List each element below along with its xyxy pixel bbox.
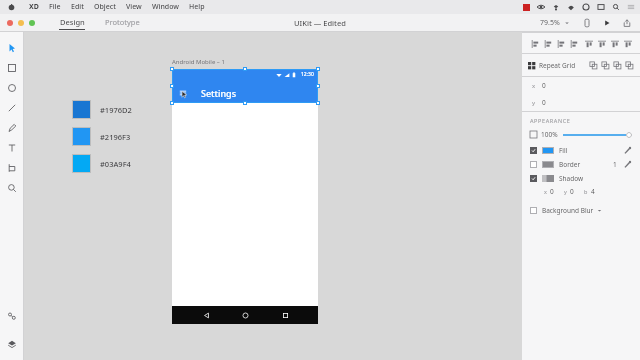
button[interactable]: Status item [537, 3, 545, 11]
button[interactable]: #2196F3 [72, 127, 131, 146]
button[interactable]: Navigation drawer [179, 89, 187, 97]
button[interactable]: Boolean op 2 [601, 61, 610, 70]
button[interactable]: Color picker for Border [623, 160, 632, 169]
button[interactable]: Zoom [29, 20, 35, 26]
button[interactable]: Status item [552, 3, 560, 11]
staticText: y [532, 99, 536, 107]
staticText: Window [152, 2, 179, 12]
staticText: Design [60, 17, 85, 27]
button[interactable]: Distribute 1 [528, 37, 541, 50]
button[interactable]: Edit [66, 2, 89, 12]
button[interactable]: Status item [627, 3, 635, 11]
staticText: Background Blur [542, 206, 594, 215]
button[interactable]: Zoom level [564, 20, 570, 26]
button[interactable]: Line [2, 98, 22, 118]
staticText: XD [29, 2, 39, 12]
staticText: 0 [550, 187, 554, 196]
button[interactable]: Help [184, 2, 210, 12]
button[interactable]: Share [622, 18, 632, 28]
button[interactable]: Align 2 [595, 37, 608, 50]
button[interactable]: Back [200, 309, 212, 321]
button[interactable]: Align 1 [582, 37, 595, 50]
staticText: UIKit — Edited [294, 18, 346, 28]
button[interactable]: Android Mobile – 1 [172, 58, 225, 66]
button[interactable]: x [544, 187, 554, 196]
button[interactable]: Text [2, 138, 22, 158]
button[interactable]: Artboard [2, 158, 22, 178]
button[interactable]: Pen [2, 118, 22, 138]
button[interactable]: Status item [582, 3, 590, 11]
button[interactable]: Distribute 4 [567, 37, 580, 50]
button[interactable]: Status item [567, 3, 575, 11]
button[interactable]: Window [147, 2, 184, 12]
button[interactable]: Rectangle [2, 58, 22, 78]
button[interactable]: Background Blur [530, 206, 632, 215]
staticText: x [544, 188, 547, 195]
button[interactable]: Prototype [105, 17, 140, 30]
staticText: 0 [570, 187, 574, 196]
staticText: Settings [201, 87, 237, 99]
staticText: Border [559, 160, 581, 169]
staticText: 12:30 [301, 71, 314, 78]
staticText: 79.5% [540, 18, 560, 28]
button[interactable]: Device preview [582, 18, 592, 28]
staticText: #03A9F4 [100, 159, 131, 169]
button[interactable]: Distribute 2 [541, 37, 554, 50]
button[interactable]: Select [2, 38, 22, 58]
button[interactable]: Status item [597, 3, 605, 11]
button[interactable]: Layers [2, 334, 22, 354]
staticText: Object [94, 2, 116, 12]
staticText: APPEARANCE [530, 117, 571, 124]
button[interactable]: Design [59, 17, 85, 30]
button[interactable]: Home [239, 309, 251, 321]
staticText: Repeat Grid [539, 61, 576, 70]
button[interactable]: Boolean op 3 [613, 61, 622, 70]
staticText: x [532, 82, 536, 90]
staticText: View [126, 2, 142, 12]
button[interactable]: File [44, 2, 66, 12]
button[interactable]: Repeat Grid [528, 61, 576, 70]
button[interactable]: Align 3 [608, 37, 621, 50]
staticText: y [564, 188, 567, 195]
button[interactable]: Status item [612, 3, 620, 11]
staticText: 1 [613, 160, 617, 169]
staticText: #2196F3 [100, 132, 131, 142]
button[interactable]: Border [530, 160, 632, 169]
staticText: 0 [542, 98, 546, 107]
button[interactable]: Components [2, 306, 22, 326]
staticText: Edit [71, 2, 84, 12]
button[interactable]: Boolean op 1 [589, 61, 598, 70]
button[interactable]: Distribute 3 [554, 37, 567, 50]
button[interactable]: Shadow [530, 174, 632, 183]
button[interactable]: XD [24, 2, 44, 12]
staticText: Fill [559, 146, 568, 155]
button[interactable]: Recents [279, 309, 291, 321]
button[interactable]: Fill [530, 146, 632, 155]
staticText: 4 [591, 187, 595, 196]
button[interactable]: Minimize [18, 20, 24, 26]
button[interactable]: 100% [530, 130, 632, 139]
button[interactable]: Align 4 [621, 37, 634, 50]
staticText: File [49, 2, 61, 12]
button[interactable]: #1976D2 [72, 100, 132, 119]
button[interactable]: Close [7, 20, 13, 26]
button[interactable]: #03A9F4 [72, 154, 131, 173]
button[interactable]: Zoom [2, 178, 22, 198]
button[interactable]: x [532, 77, 640, 94]
staticText: 100% [541, 130, 558, 139]
button[interactable]: View [121, 2, 147, 12]
button[interactable]: Navigation drawer [172, 83, 318, 103]
button[interactable]: Boolean op 4 [625, 61, 634, 70]
button[interactable]: y [532, 94, 640, 111]
staticText: #1976D2 [100, 105, 132, 115]
button[interactable]: Ellipse [2, 78, 22, 98]
button[interactable]: y [564, 187, 574, 196]
button[interactable]: Color picker for Fill [623, 146, 632, 155]
staticText: Shadow [559, 174, 584, 183]
button[interactable]: Object [89, 2, 121, 12]
staticText: 0 [542, 81, 546, 90]
staticText: b [584, 188, 588, 195]
button[interactable]: Play preview [602, 18, 612, 28]
staticText: Prototype [105, 17, 140, 27]
button[interactable]: b [584, 187, 595, 196]
